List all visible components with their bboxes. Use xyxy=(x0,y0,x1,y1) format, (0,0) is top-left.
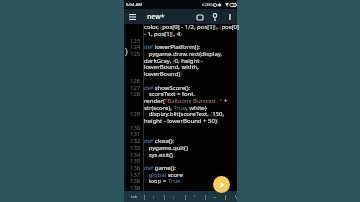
staticText: 127 xyxy=(130,84,141,91)
staticText: render("Balloons Bursted : " + xyxy=(144,97,228,104)
staticText: height - lowerBound + 50)) xyxy=(144,117,219,124)
staticText: 135 xyxy=(130,157,141,164)
staticText: lowerBound, width, xyxy=(144,63,199,70)
staticText: def showScore(): xyxy=(144,84,191,91)
staticText: color, (pos[0] - 1/2, pos[1]), (pos[0] xyxy=(144,23,239,30)
staticText: 6:04 AM xyxy=(126,2,143,8)
staticText: | xyxy=(184,193,187,200)
staticText: 137 xyxy=(130,171,141,178)
staticText: 130 xyxy=(130,124,141,131)
staticText: str(score), True, white) xyxy=(144,104,207,111)
button[interactable]: | xyxy=(200,191,210,202)
staticText: new* xyxy=(147,12,165,21)
staticText: 126 xyxy=(130,77,141,84)
button[interactable]: Navigation menu xyxy=(126,11,138,23)
button[interactable]: \ xyxy=(231,191,241,202)
staticText: 138 xyxy=(130,177,141,184)
staticText: 132 xyxy=(130,137,141,144)
staticText: : xyxy=(153,193,155,200)
staticText: ) xyxy=(125,45,128,57)
staticText: sys.exit() xyxy=(144,151,173,158)
staticText: 131 xyxy=(130,130,141,137)
staticText: 123 xyxy=(130,37,141,44)
button[interactable]: | xyxy=(139,191,149,202)
staticText: 133 xyxy=(130,144,141,151)
staticText: | xyxy=(204,193,207,200)
staticText: display.blit(scoreText, (150, xyxy=(144,110,225,117)
button[interactable]: ~ xyxy=(210,191,220,202)
staticText: 134 xyxy=(130,151,141,158)
staticText: 129 xyxy=(130,110,141,117)
staticText: tab xyxy=(131,194,138,200)
button[interactable]: tab xyxy=(129,191,139,202)
staticText: 138 xyxy=(130,184,141,191)
button[interactable]: | xyxy=(220,191,230,202)
staticText: 128 xyxy=(130,90,141,97)
staticText: : xyxy=(173,193,175,200)
button[interactable]: Suggestions xyxy=(209,11,221,23)
staticText: loop = True xyxy=(144,177,181,184)
button[interactable]: | xyxy=(159,191,169,202)
staticText: lowerBound)) xyxy=(144,70,182,77)
staticText: def close(): xyxy=(144,137,175,144)
staticText: scoreText = font. xyxy=(144,90,196,97)
staticText: 125 xyxy=(130,50,141,57)
button[interactable]: Run xyxy=(213,176,230,193)
staticText: def game(): xyxy=(144,164,176,171)
staticText: pygame.quit() xyxy=(144,144,188,151)
staticText: global score xyxy=(144,171,183,178)
staticText: pygame.draw.rect(display, xyxy=(144,50,223,57)
staticText: | xyxy=(163,193,166,200)
staticText: darkGray, (0, height - xyxy=(144,57,203,64)
button[interactable]: | xyxy=(180,191,190,202)
staticText: ' xyxy=(194,193,196,200)
staticText: 4.2kB/s xyxy=(202,2,214,7)
staticText: def lowerPlatform(): xyxy=(144,43,201,50)
button[interactable]: : xyxy=(149,191,159,202)
staticText: 124 xyxy=(130,43,141,50)
button[interactable]: Toggle keyboard xyxy=(194,11,206,23)
staticText: | xyxy=(143,193,146,200)
staticText: \ xyxy=(235,193,238,200)
button[interactable]: : xyxy=(169,191,179,202)
staticText: 136 xyxy=(130,164,141,171)
staticText: | xyxy=(224,193,227,200)
button[interactable]: More options xyxy=(224,11,236,23)
staticText: ~ xyxy=(213,193,217,200)
staticText: - 1, pos[1]), 4) xyxy=(144,30,182,37)
button[interactable]: ' xyxy=(190,191,200,202)
